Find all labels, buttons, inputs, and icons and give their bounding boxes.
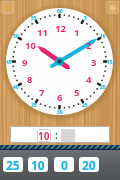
staticText: 3 <box>91 56 97 68</box>
staticText: 25 <box>6 157 20 172</box>
staticText: 9 <box>22 56 28 68</box>
button[interactable]: 25 <box>3 157 23 172</box>
staticText: 30 <box>57 109 63 116</box>
staticText: 45 <box>6 59 12 66</box>
staticText: 10 <box>25 39 36 51</box>
staticText: 1 <box>74 26 80 38</box>
staticText: 6 <box>57 91 63 103</box>
staticText: 15 <box>107 59 113 66</box>
staticText: 60 <box>57 8 63 15</box>
staticText: 10 <box>100 33 106 40</box>
staticText: 20 <box>100 84 106 91</box>
staticText: 10 <box>38 129 50 142</box>
staticText: : <box>55 128 58 142</box>
button[interactable]: Back <box>1 1 14 14</box>
button[interactable]: 10 <box>28 157 48 172</box>
staticText: 0 <box>61 157 68 172</box>
staticText: 7 <box>39 86 45 98</box>
staticText: 12 <box>55 22 66 34</box>
staticText: 40 <box>13 84 19 91</box>
button[interactable]: 0 <box>54 157 74 172</box>
staticText: 4 <box>86 73 92 85</box>
staticText: 35 <box>31 102 37 109</box>
staticText: 55 <box>31 15 37 22</box>
staticText: 5 <box>74 86 80 98</box>
staticText: 50 <box>13 33 19 40</box>
staticText: 10 <box>31 157 45 172</box>
button[interactable]: Settings <box>106 1 119 14</box>
staticText: 25 <box>82 102 88 109</box>
button[interactable]: Minutes <box>61 129 75 142</box>
staticText: 8 <box>27 73 33 85</box>
staticText: 11 <box>37 26 48 38</box>
staticText: 2 <box>86 39 92 51</box>
button[interactable]: 20 <box>79 157 99 172</box>
staticText: 20 <box>82 157 96 172</box>
button[interactable]: 10 <box>37 129 51 142</box>
staticText: 5 <box>84 15 87 22</box>
